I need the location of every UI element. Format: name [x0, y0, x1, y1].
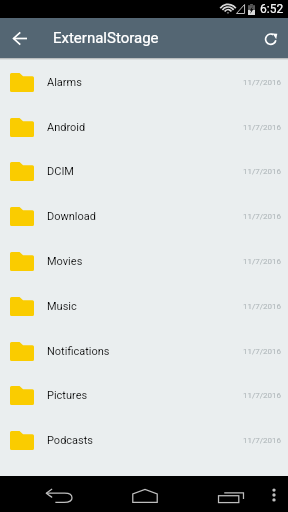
staticText: 11/7/2016: [243, 391, 282, 400]
button[interactable]: Download: [0, 194, 288, 239]
button[interactable]: Music: [0, 284, 288, 329]
staticText: 6:52: [260, 2, 284, 16]
staticText: Notifications: [47, 345, 110, 358]
button[interactable]: Back: [34, 476, 83, 512]
staticText: 11/7/2016: [243, 436, 282, 445]
button[interactable]: Android: [0, 105, 288, 149]
button[interactable]: Notifications: [0, 329, 288, 373]
staticText: Movies: [47, 255, 83, 268]
staticText: Alarms: [47, 76, 82, 89]
staticText: 11/7/2016: [243, 78, 282, 87]
button[interactable]: Refresh: [248, 18, 288, 58]
button[interactable]: Podcasts: [0, 418, 288, 463]
staticText: Download: [47, 210, 96, 223]
staticText: Podcasts: [47, 434, 94, 447]
staticText: 11/7/2016: [243, 347, 282, 356]
button[interactable]: More options: [259, 476, 288, 512]
staticText: DCIM: [47, 165, 74, 178]
button[interactable]: Recent apps: [206, 476, 255, 512]
button[interactable]: DCIM: [0, 149, 288, 194]
staticText: 11/7/2016: [243, 302, 282, 311]
staticText: 11/7/2016: [243, 257, 282, 266]
button[interactable]: Movies: [0, 239, 288, 284]
button[interactable]: Home: [120, 476, 169, 512]
staticText: ExternalStorage: [53, 29, 159, 47]
staticText: Music: [47, 300, 77, 313]
staticText: Android: [47, 121, 86, 134]
staticText: Pictures: [47, 389, 88, 402]
button[interactable]: Alarms: [0, 60, 288, 105]
button[interactable]: Pictures: [0, 373, 288, 418]
button[interactable]: Back: [0, 18, 40, 58]
staticText: 11/7/2016: [243, 212, 282, 221]
staticText: 11/7/2016: [243, 123, 282, 132]
staticText: 11/7/2016: [243, 167, 282, 176]
